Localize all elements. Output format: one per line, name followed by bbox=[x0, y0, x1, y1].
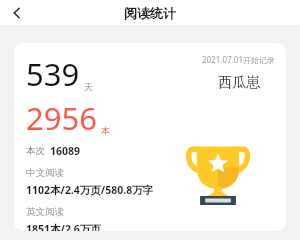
staticText: 1851本/2.6万页 bbox=[26, 222, 101, 231]
staticText: 西瓜崽 bbox=[218, 74, 260, 92]
staticText: 16089 bbox=[50, 144, 81, 158]
staticText: 中文阅读 bbox=[26, 167, 64, 179]
button[interactable]: 539 bbox=[14, 43, 286, 231]
staticText: 1102本/2.4万页/580.8万字 bbox=[26, 183, 154, 197]
staticText: 本 bbox=[101, 125, 110, 136]
staticText: 阅读统计 bbox=[124, 5, 176, 21]
staticText: 2021.07.01开始记录 bbox=[202, 54, 275, 65]
staticText: 本次 bbox=[26, 145, 45, 157]
staticText: 英文阅读 bbox=[26, 206, 64, 218]
staticText: 539 bbox=[26, 53, 80, 95]
staticText: 天 bbox=[84, 81, 93, 92]
button[interactable]: Back bbox=[0, 0, 34, 25]
staticText: 2956 bbox=[26, 97, 97, 139]
